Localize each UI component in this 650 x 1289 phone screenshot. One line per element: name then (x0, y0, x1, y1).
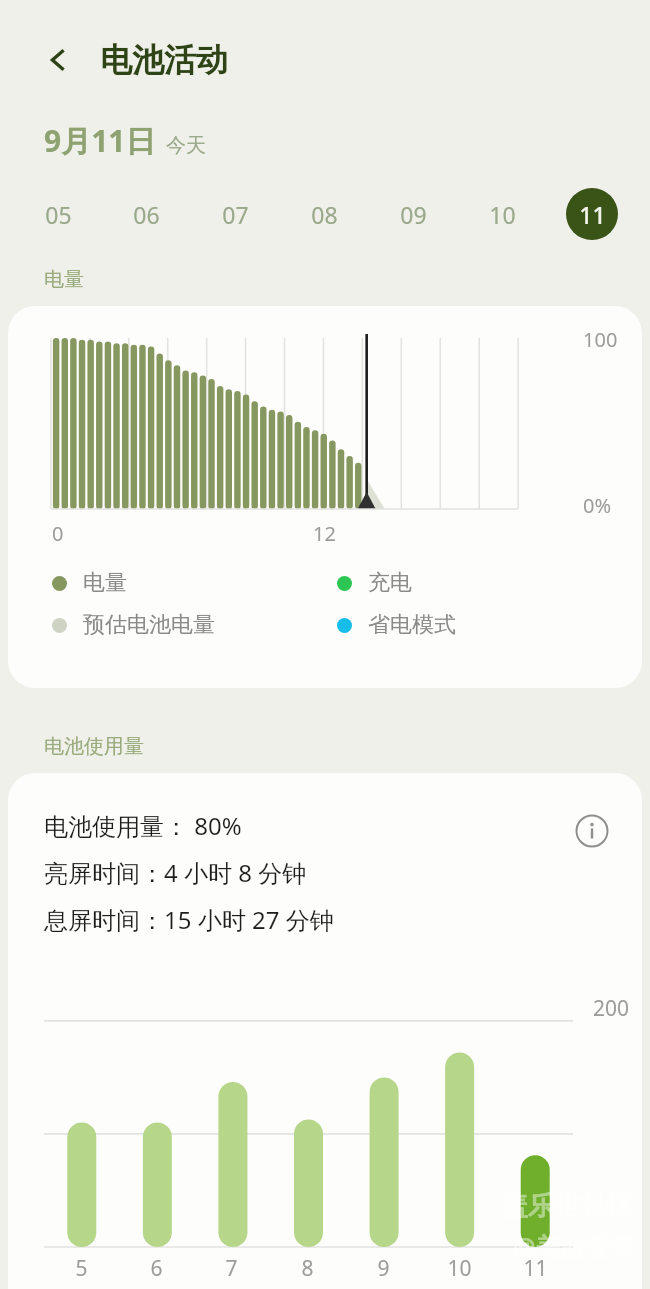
staticText: 05 (45, 199, 72, 230)
button[interactable]: Back (32, 34, 84, 86)
staticText: 电池使用量 (44, 734, 144, 759)
staticText: 6 (150, 1254, 163, 1283)
staticText: 9 (377, 1254, 390, 1283)
staticText: 8 (301, 1254, 314, 1283)
staticText: 0% (583, 492, 612, 519)
staticText: 06 (133, 199, 160, 230)
button[interactable]: Information (570, 809, 614, 853)
staticText: 5 (75, 1254, 88, 1283)
staticText: 0 (52, 520, 64, 547)
button[interactable]: 07 (191, 183, 280, 245)
button[interactable]: 08 (280, 183, 369, 245)
staticText: 10 (447, 1254, 472, 1283)
button[interactable]: 10 (458, 183, 547, 245)
staticText: 电量 (83, 569, 127, 597)
staticText: 100 (583, 326, 618, 353)
staticText: 11 (523, 1254, 548, 1283)
staticText: 200 (593, 994, 630, 1023)
button[interactable]: 09 (369, 183, 458, 245)
staticText: 09 (400, 199, 427, 230)
staticText: 息屏时间：15 小时 27 分钟 (44, 903, 334, 936)
staticText: 12 (313, 520, 336, 547)
staticText: 11 (579, 199, 606, 230)
button[interactable]: 100 (8, 306, 642, 688)
staticText: 电池使用量： 80% (44, 809, 242, 842)
staticText: 预估电池电量 (83, 611, 215, 639)
button[interactable]: 05 (14, 183, 102, 245)
staticText: 盖乐世社区 (501, 1189, 636, 1223)
button[interactable]: 预估电池电量 (52, 611, 337, 639)
staticText: 10 (489, 199, 516, 230)
staticText: 充电 (368, 569, 412, 597)
staticText: 08 (311, 199, 338, 230)
staticText: 9月11日 (44, 120, 156, 161)
staticText: @美丽爱笑 (513, 1229, 636, 1263)
staticText: 今天 (166, 133, 206, 158)
staticText: 07 (222, 199, 249, 230)
staticText: 电池活动 (100, 40, 228, 80)
button[interactable]: 省电模式 (337, 611, 622, 639)
button[interactable]: 充电 (337, 569, 622, 597)
button[interactable]: 电量 (52, 569, 337, 597)
staticText: 7 (225, 1254, 238, 1283)
staticText: 省电模式 (368, 611, 456, 639)
staticText: 电量 (44, 267, 84, 292)
button[interactable]: 06 (102, 183, 191, 245)
staticText: 亮屏时间：4 小时 8 分钟 (44, 856, 307, 889)
button[interactable]: 11 (547, 183, 636, 245)
